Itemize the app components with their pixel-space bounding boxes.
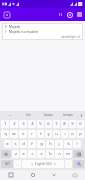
staticText: i (64, 131, 66, 137)
button[interactable]: Navigate up (2, 10, 11, 19)
staticText: x (22, 151, 25, 157)
staticText: t (40, 131, 42, 137)
button[interactable]: k (64, 140, 72, 148)
staticText: d (22, 141, 25, 147)
staticText: 6 (47, 121, 50, 127)
button[interactable]: m (64, 150, 72, 158)
staticText: 9 (71, 121, 74, 127)
staticText: . (68, 161, 70, 167)
button[interactable]: b (46, 150, 54, 158)
button[interactable]: Shift (1, 150, 11, 158)
button[interactable]: i (61, 130, 68, 138)
staticText: k (67, 141, 70, 147)
button[interactable]: o (69, 130, 76, 138)
button[interactable]: 7 (53, 120, 60, 128)
staticText: j (58, 141, 60, 147)
staticText: l (76, 141, 78, 147)
button[interactable]: Backspace (73, 150, 84, 158)
staticText: h (49, 141, 52, 147)
staticText: 1 (4, 121, 7, 127)
button[interactable]: 0 (77, 120, 84, 128)
staticText: r (31, 131, 33, 137)
button[interactable]: 0 (2, 23, 83, 40)
staticText: 4 (31, 121, 34, 127)
staticText: knows (63, 113, 73, 117)
button[interactable]: list (19, 113, 38, 117)
button[interactable]: More options (75, 10, 84, 19)
button[interactable]: n (55, 150, 63, 158)
button[interactable]: p (77, 130, 84, 138)
staticText: w (12, 131, 16, 137)
staticText: abcdefghi hi (61, 35, 81, 39)
staticText: Mujeeb (9, 25, 21, 29)
button[interactable]: 2 (10, 120, 18, 128)
button[interactable]: — (0, 113, 19, 117)
button[interactable]: Space (22, 160, 64, 168)
staticText: p (79, 131, 82, 137)
button[interactable]: More suggestions (78, 114, 85, 117)
button[interactable]: 1 (1, 120, 9, 128)
button[interactable]: !#1 (1, 160, 13, 168)
button[interactable]: Search (73, 160, 84, 168)
button[interactable]: Settings (65, 10, 74, 19)
button[interactable]: 9 (69, 120, 76, 128)
staticText: b (49, 151, 52, 157)
button[interactable]: keeps (38, 113, 58, 117)
staticText: !#1 (5, 162, 10, 166)
button[interactable]: Recent apps (0, 170, 22, 180)
button[interactable]: y (45, 130, 52, 138)
button[interactable]: z (12, 150, 19, 158)
staticText: 3 (22, 121, 25, 127)
staticText: a (6, 141, 9, 147)
button[interactable]: v (37, 150, 45, 158)
button[interactable]: l (73, 140, 81, 148)
staticText: e (22, 131, 25, 137)
staticText: m (66, 151, 70, 157)
staticText: , (17, 161, 19, 167)
staticText: English (US) (35, 162, 52, 166)
button[interactable]: t (37, 130, 44, 138)
staticText: g (40, 141, 43, 147)
button[interactable]: Home (22, 170, 43, 180)
staticText: 8 (63, 121, 66, 127)
button[interactable]: knows (58, 113, 78, 117)
button[interactable]: q (1, 130, 9, 138)
button[interactable]: 4 (28, 120, 36, 128)
button[interactable]: c (28, 150, 36, 158)
button[interactable]: Switch keyboard (64, 170, 85, 180)
button[interactable]: 3 (19, 120, 27, 128)
button[interactable]: h (46, 140, 54, 148)
staticText: u (55, 131, 58, 137)
button[interactable]: s (12, 140, 19, 148)
button[interactable]: 6 (45, 120, 52, 128)
button[interactable]: u (53, 130, 60, 138)
button[interactable]: Attach (57, 11, 64, 18)
button[interactable]: r (28, 130, 36, 138)
button[interactable]: d (20, 140, 27, 148)
staticText: n (58, 151, 61, 157)
button[interactable]: 5 (37, 120, 44, 128)
button[interactable]: , (14, 160, 21, 168)
staticText: 0 (79, 121, 82, 127)
staticText: 0 (4, 25, 9, 29)
button[interactable]: g (37, 140, 45, 148)
staticText: s (14, 141, 17, 147)
staticText: — (8, 113, 12, 117)
staticText: list (26, 113, 31, 117)
button[interactable]: w (10, 130, 18, 138)
staticText: 5 (39, 121, 42, 127)
button[interactable]: f (28, 140, 36, 148)
staticText: y (47, 131, 50, 137)
staticText: q (4, 131, 7, 137)
button[interactable]: j (55, 140, 63, 148)
staticText: 2 (13, 121, 16, 127)
button[interactable]: 8 (61, 120, 68, 128)
button[interactable]: x (20, 150, 27, 158)
button[interactable]: e (19, 130, 27, 138)
button[interactable]: a (4, 140, 11, 148)
staticText: keeps (44, 113, 53, 117)
staticText: 1 (4, 30, 9, 34)
staticText: c (31, 151, 34, 157)
button[interactable]: Hide keyboard (43, 170, 64, 180)
